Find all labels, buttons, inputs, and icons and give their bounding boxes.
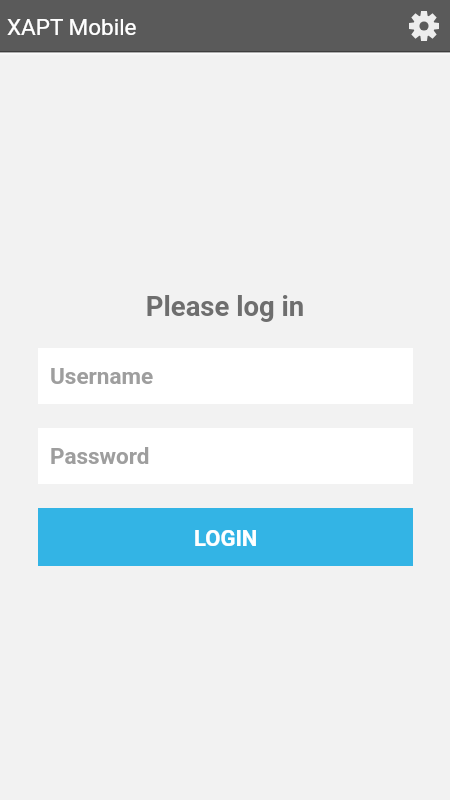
button[interactable]: Settings [402, 4, 446, 48]
staticText: LOGIN [194, 526, 258, 552]
staticText: XAPT Mobile [7, 14, 137, 40]
staticText: Please log in [0, 290, 450, 322]
button[interactable]: Password [38, 428, 413, 484]
button[interactable]: LOGIN [38, 508, 413, 566]
staticText: Username [50, 363, 154, 389]
staticText: Password [50, 443, 150, 469]
button[interactable]: Username [38, 348, 413, 404]
